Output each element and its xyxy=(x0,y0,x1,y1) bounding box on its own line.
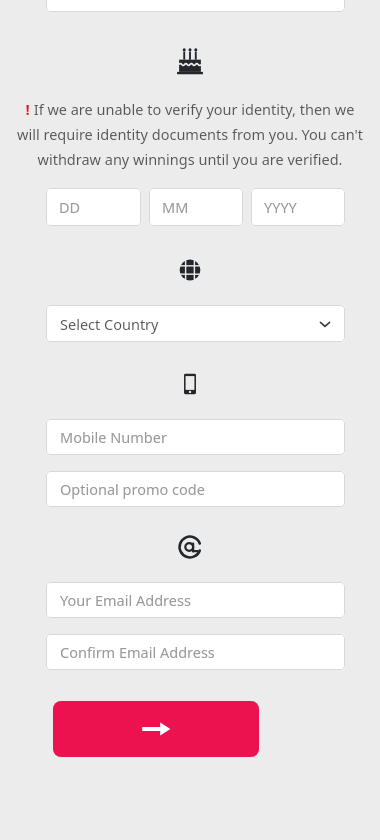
button[interactable] xyxy=(46,0,345,12)
button[interactable]: Continue xyxy=(53,701,259,757)
other: Mobile xyxy=(177,371,203,397)
staticText: DD xyxy=(59,197,81,217)
button[interactable]: YYYY xyxy=(251,188,345,226)
staticText: Select Country xyxy=(60,314,319,334)
staticText: MM xyxy=(162,197,189,217)
button[interactable]: MM xyxy=(149,188,243,226)
button[interactable]: Your Email Address xyxy=(46,582,345,618)
other: Country xyxy=(177,257,203,283)
button[interactable]: Select Country xyxy=(46,305,345,342)
staticText: ! If we are unable to verify your identi… xyxy=(14,99,366,169)
staticText: YYYY xyxy=(264,197,297,217)
staticText: Mobile Number xyxy=(60,427,167,447)
button[interactable]: Optional promo code xyxy=(46,471,345,507)
other: Date of birth xyxy=(173,44,207,78)
other: Email xyxy=(177,534,203,560)
button[interactable]: DD xyxy=(46,188,141,226)
staticText: Your Email Address xyxy=(60,590,191,610)
button[interactable]: Mobile Number xyxy=(46,419,345,455)
staticText: Optional promo code xyxy=(60,479,205,499)
staticText: Confirm Email Address xyxy=(60,642,215,662)
button[interactable]: Confirm Email Address xyxy=(46,634,345,670)
